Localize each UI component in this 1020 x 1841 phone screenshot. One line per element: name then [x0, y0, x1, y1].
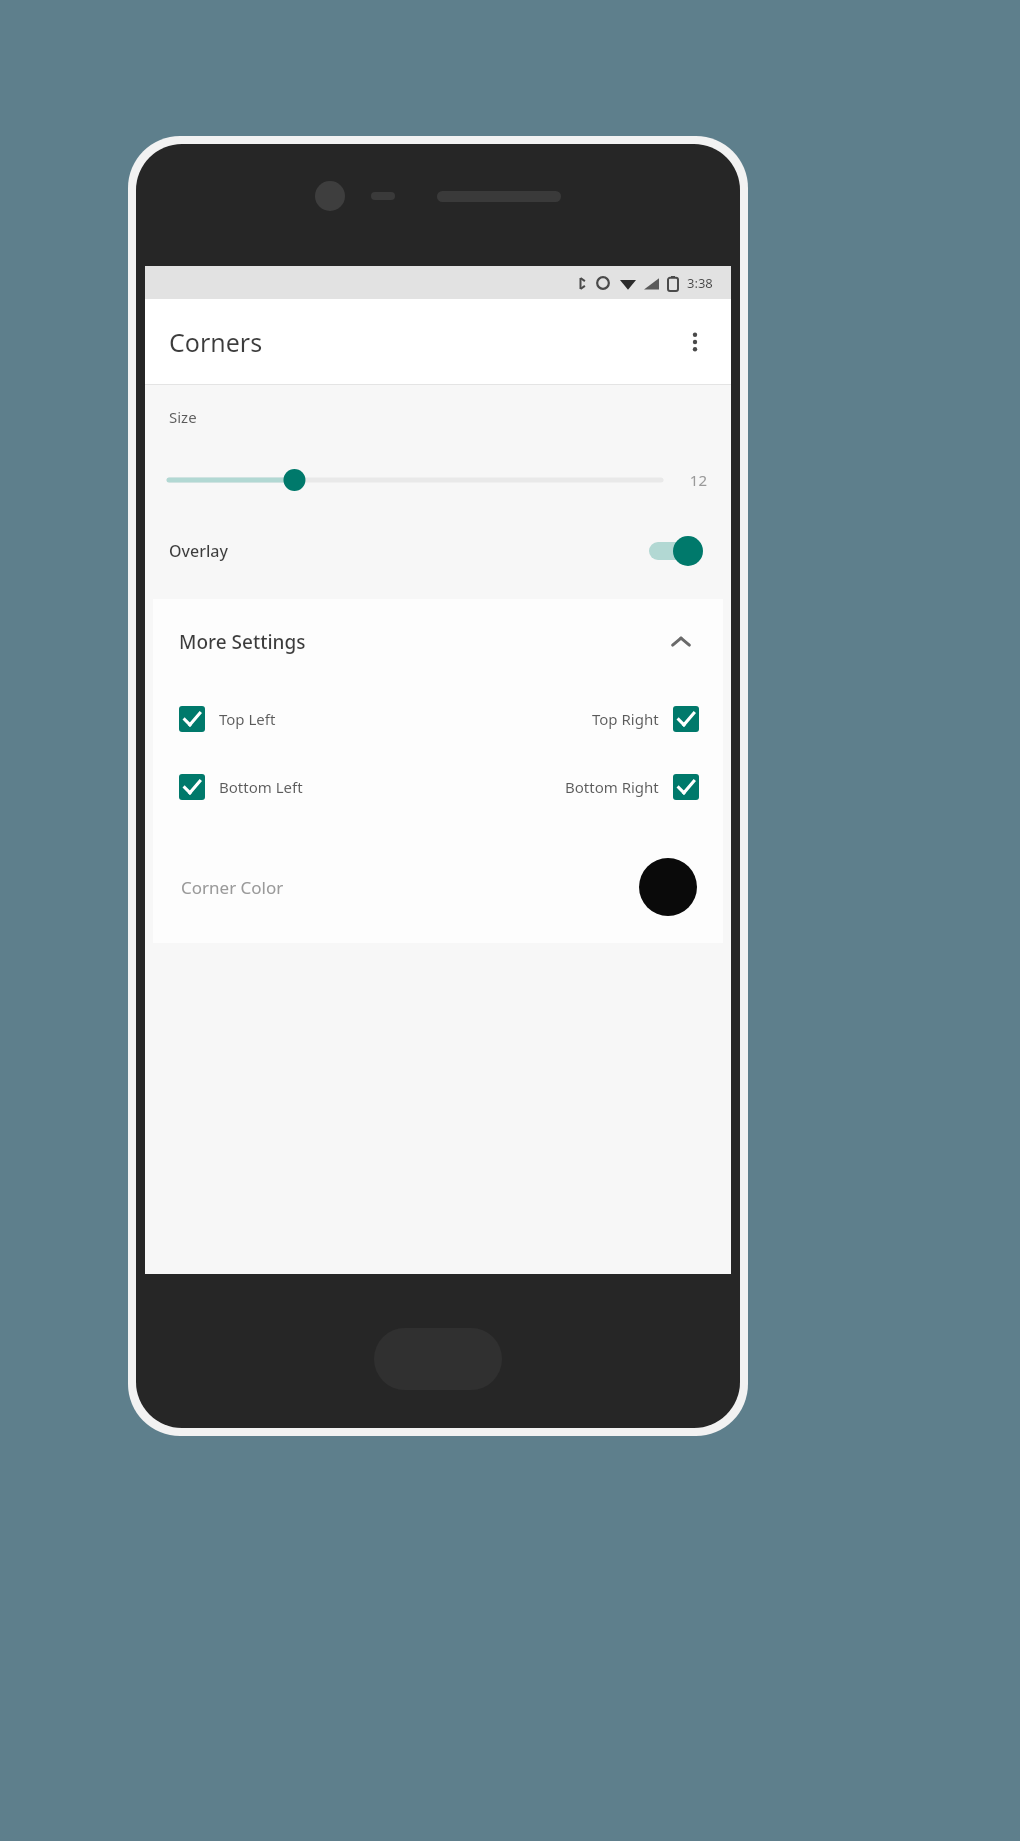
button[interactable]: Size slider — [169, 465, 661, 495]
staticText: 12 — [679, 470, 707, 490]
staticText: Bottom Left — [219, 777, 303, 797]
other: Collapse — [661, 622, 701, 662]
button[interactable]: Bottom Right — [565, 774, 699, 800]
staticText: Size — [169, 407, 197, 427]
staticText: Overlay — [169, 540, 228, 562]
staticText: Corner Color — [181, 876, 284, 899]
button[interactable]: Bottom Left — [179, 774, 303, 800]
staticText: Top Right — [592, 709, 659, 729]
button[interactable]: Corner Color — [153, 839, 723, 935]
staticText: Corners — [169, 325, 263, 359]
button[interactable]: More Settings — [153, 599, 723, 685]
button[interactable]: Overlay — [145, 503, 731, 599]
button[interactable]: More options — [667, 314, 723, 370]
staticText: Top Left — [219, 709, 276, 729]
staticText: 3:38 — [687, 274, 713, 292]
staticText: More Settings — [179, 629, 306, 655]
staticText: Bottom Right — [565, 777, 659, 797]
button[interactable]: Top Left — [179, 706, 276, 732]
button[interactable]: Top Right — [592, 706, 699, 732]
